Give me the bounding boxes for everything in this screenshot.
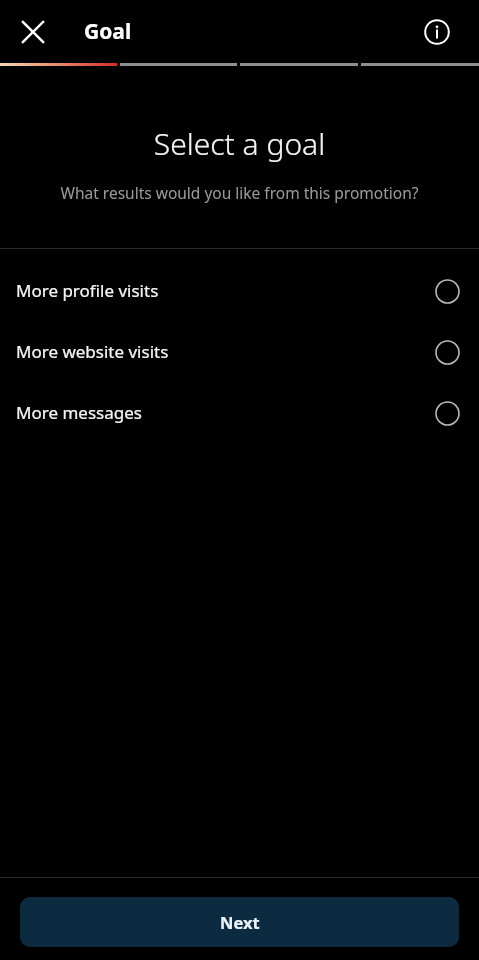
- staticText: More messages: [16, 401, 434, 424]
- button[interactable]: Next: [20, 897, 459, 947]
- staticText: More website visits: [16, 340, 434, 363]
- button[interactable]: Close: [13, 12, 53, 52]
- staticText: Select a goal: [0, 123, 479, 164]
- button[interactable]: Information: [417, 12, 457, 52]
- button[interactable]: More messages: [0, 382, 479, 443]
- staticText: More profile visits: [16, 279, 434, 302]
- staticText: What results would you like from this pr…: [20, 182, 459, 203]
- staticText: Goal: [84, 17, 132, 46]
- staticText: Next: [220, 911, 260, 933]
- button[interactable]: More profile visits: [0, 260, 479, 321]
- button[interactable]: More website visits: [0, 321, 479, 382]
